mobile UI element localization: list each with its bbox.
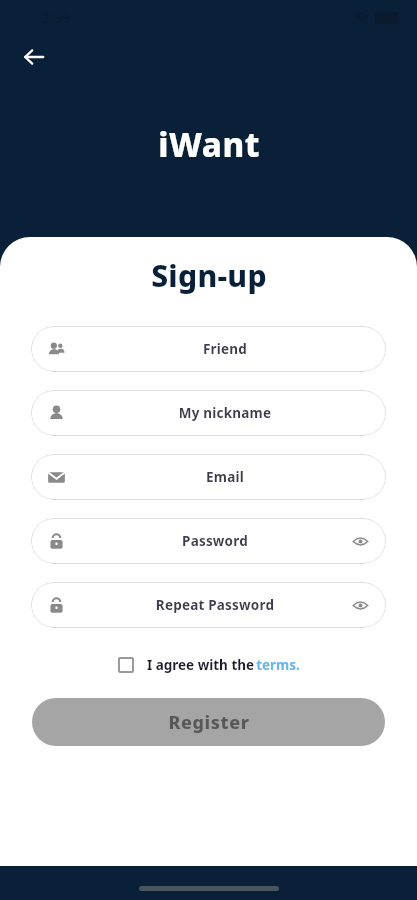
staticText: Register: [168, 710, 250, 735]
button[interactable]: Friend: [31, 326, 386, 372]
button[interactable]: terms.: [256, 656, 300, 674]
staticText: iWant: [158, 122, 260, 167]
staticText: My nickname: [80, 404, 370, 422]
staticText: I agree with the: [145, 656, 256, 674]
button[interactable]: Back: [14, 37, 54, 77]
button[interactable]: Register: [32, 698, 385, 746]
staticText: Email: [80, 468, 370, 486]
staticText: Repeat Password: [80, 596, 350, 614]
staticText: 2:39: [42, 8, 70, 27]
staticText: Sign-up: [151, 255, 267, 296]
button[interactable]: Show password: [350, 595, 370, 615]
button[interactable]: Show password: [350, 531, 370, 551]
button[interactable]: My nickname: [31, 390, 386, 436]
button[interactable]: Repeat Password: [31, 582, 386, 628]
button[interactable]: Email: [31, 454, 386, 500]
staticText: Password: [80, 532, 350, 550]
staticText: Friend: [80, 340, 370, 358]
button[interactable]: Password: [31, 518, 386, 564]
button[interactable]: I agree with the: [118, 656, 256, 674]
